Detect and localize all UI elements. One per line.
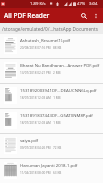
staticText: 1531891837443DF...G5ATXNM8P.pdf — [20, 112, 93, 118]
staticText: Bharat Nu Bandharan...Answer PDF.pdf — [20, 62, 100, 68]
staticText: 11/04/2018 08:00 PM 63 KB — [20, 171, 62, 175]
button[interactable]: 1531891837443DF...G5ATXNM8P.pdf — [0, 109, 103, 134]
staticText: 1531892003941DF...DEAUCNN6Lq.pdf — [20, 87, 97, 93]
staticText: 13/07/2018 02:21 PM 2 MB — [20, 71, 61, 75]
staticText: saiya.pdf — [20, 137, 39, 143]
button[interactable]: Search — [78, 10, 90, 22]
button[interactable]: Bharat Nu Bandharan...Answer PDF.pdf — [0, 59, 103, 84]
button[interactable]: /storage/emulated/0/...hatsApp Documents — [0, 23, 103, 34]
button[interactable]: Hanuman Jayanti 2018-1.pdf — [0, 159, 103, 183]
staticText: 18/07/2018 12:03 AM 1 MB — [20, 96, 61, 100]
staticText: All PDF Reader — [4, 11, 50, 20]
button[interactable]: saiya.pdf — [0, 134, 103, 159]
staticText: 47% — [77, 1, 86, 7]
button[interactable]: Ashutosh_Resume(1).pdf — [0, 34, 103, 59]
staticText: Hanuman Jayanti 2018-1.pdf — [20, 162, 78, 168]
staticText: 09/07/2018 04:26 PM 72 KB — [20, 146, 62, 150]
staticText: 1.89 K/s — [30, 1, 46, 7]
staticText: 20/08/2018 07:16 PM 88 KB — [20, 46, 62, 50]
staticText: 18/07/2018 12:03 AM 1 MB — [20, 121, 61, 125]
staticText: /storage/emulated/0/...hatsApp Documents — [2, 26, 98, 32]
button[interactable]: 1531892003941DF...DEAUCNN6Lq.pdf — [0, 84, 103, 109]
button[interactable]: More options — [90, 10, 101, 21]
staticText: 3:04 — [89, 1, 98, 7]
staticText: Ashutosh_Resume(1).pdf — [20, 37, 71, 43]
